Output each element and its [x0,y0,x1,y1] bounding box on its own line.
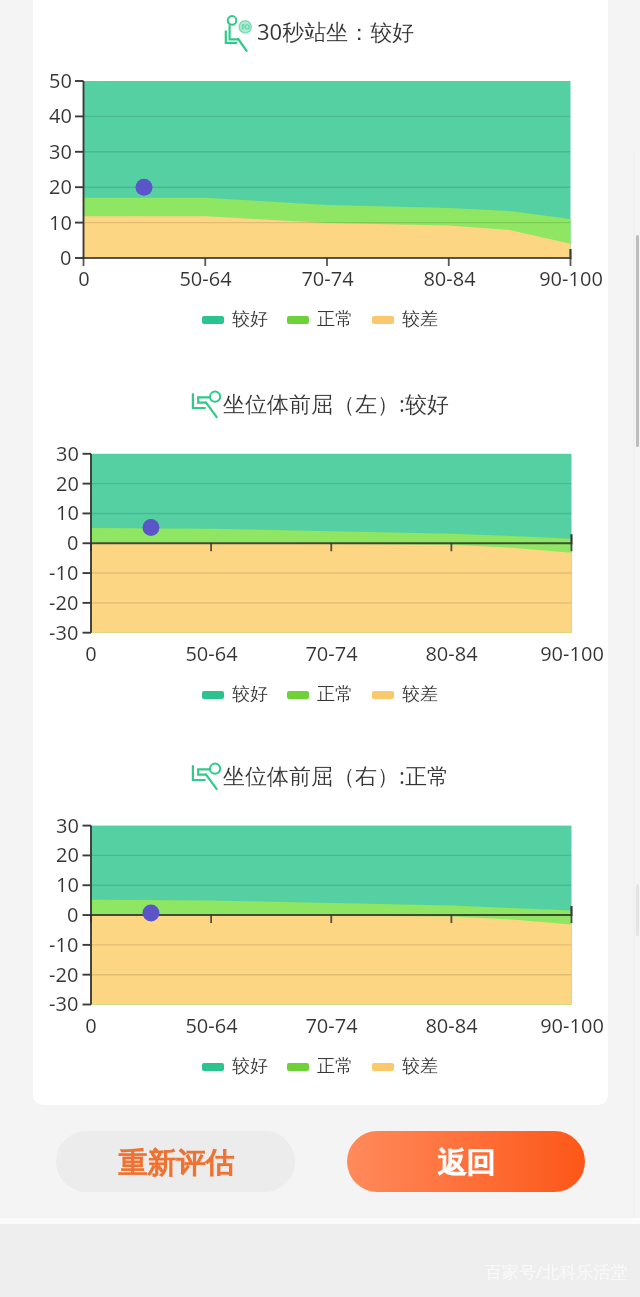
staticText: 30秒站坐：较好 [257,16,415,46]
staticText: 80-84 [425,640,478,667]
staticText: -10 [49,931,79,958]
staticText: 20 [56,841,79,868]
staticText: 50-64 [185,640,238,667]
staticText: 20 [56,470,79,497]
staticText: 0 [67,529,79,556]
staticText: 30 [56,812,79,839]
staticText: 10 [49,209,72,236]
staticText: -20 [49,961,79,988]
staticText: 0 [60,244,72,271]
staticText: 0 [85,1012,97,1039]
staticText: -30 [49,990,79,1017]
staticText: 坐位体前屈（右）:正常 [223,760,449,790]
staticText: -30 [49,619,79,646]
staticText: 较好 [232,1055,268,1078]
staticText: 80-84 [423,265,476,292]
staticText: 较差 [402,1055,438,1078]
staticText: 90-100 [540,640,604,667]
staticText: 50 [49,67,72,94]
staticText: 坐位体前屈（左）:较好 [223,388,449,418]
staticText: 较好 [232,308,268,331]
staticText: 10 [56,499,79,526]
staticText: -10 [49,559,79,586]
button[interactable]: 返回 [347,1131,585,1192]
staticText: 50-64 [179,265,232,292]
button[interactable]: 重新评估 [56,1131,295,1192]
staticText: 90-100 [539,265,603,292]
staticText: 较差 [402,683,438,706]
staticText: 0 [85,640,97,667]
staticText: 正常 [317,308,353,331]
staticText: 70-74 [301,265,354,292]
staticText: 90-100 [540,1012,604,1039]
staticText: 正常 [317,683,353,706]
staticText: 0 [78,265,90,292]
staticText: 正常 [317,1055,353,1078]
staticText: 70-74 [305,640,358,667]
staticText: 较差 [402,308,438,331]
staticText: 百家号/北科乐活堂 [485,1260,628,1283]
staticText: 0 [67,901,79,928]
staticText: 70-74 [305,1012,358,1039]
staticText: -20 [49,589,79,616]
staticText: 较好 [232,683,268,706]
staticText: 80-84 [425,1012,478,1039]
staticText: 返回 [437,1145,495,1182]
staticText: 50-64 [185,1012,238,1039]
staticText: 30 [49,138,72,165]
staticText: 20 [49,173,72,200]
staticText: 10 [56,871,79,898]
staticText: 40 [49,102,72,129]
staticText: 30 [56,440,79,467]
staticText: 重新评估 [118,1145,234,1182]
